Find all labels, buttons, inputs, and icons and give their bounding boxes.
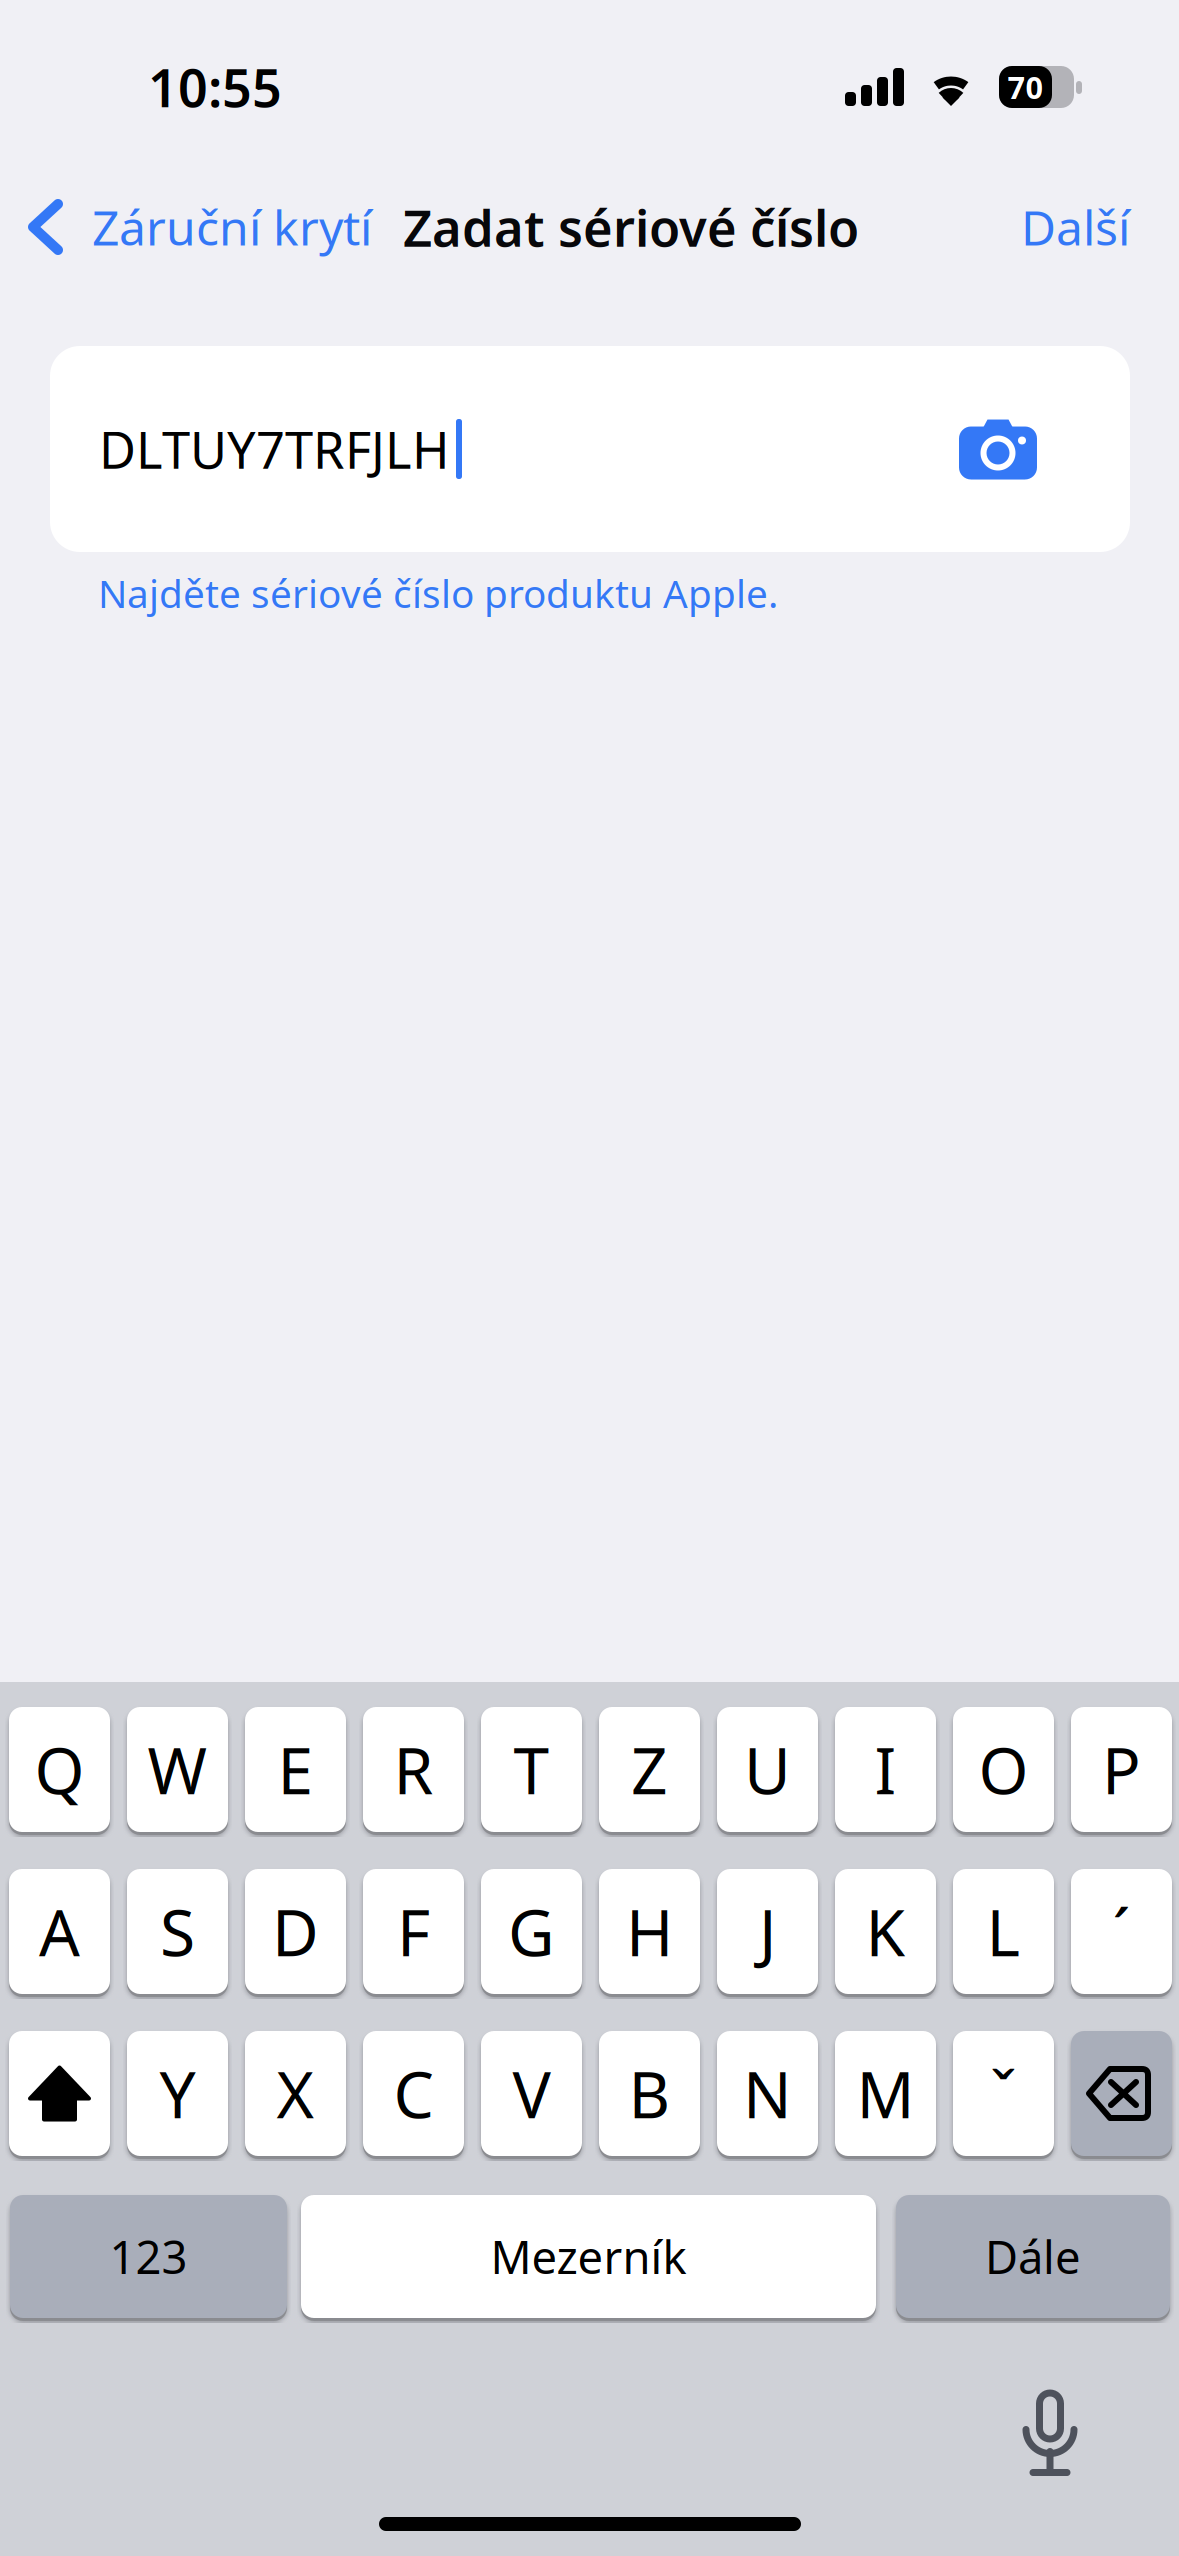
button[interactable]: O <box>953 1705 1054 1834</box>
staticText: 123 <box>109 2226 187 2287</box>
button[interactable]: T <box>481 1705 582 1834</box>
button[interactable]: D <box>245 1867 346 1996</box>
staticText: V <box>512 2051 550 2136</box>
button[interactable]: N <box>717 2029 818 2158</box>
staticText: ˇ <box>990 2051 1017 2136</box>
button[interactable] <box>1071 2029 1172 2158</box>
button[interactable]: G <box>481 1867 582 1996</box>
button[interactable]: I <box>835 1705 936 1834</box>
button[interactable]: W <box>127 1705 228 1834</box>
button[interactable]: F <box>363 1867 464 1996</box>
button[interactable]: Skenovat fotoaparátem <box>938 394 1058 504</box>
staticText: K <box>865 1889 905 1974</box>
staticText: Z <box>631 1727 668 1812</box>
staticText: B <box>628 2051 670 2136</box>
button[interactable]: Záruční krytí <box>27 177 377 277</box>
staticText: X <box>276 2051 314 2136</box>
button[interactable]: Diktovat <box>995 2361 1105 2471</box>
staticText: L <box>986 1889 1020 1974</box>
staticText: Záruční krytí <box>92 195 372 259</box>
button[interactable]: Dále <box>896 2193 1170 2320</box>
button[interactable]: M <box>835 2029 936 2158</box>
staticText: R <box>393 1727 433 1812</box>
staticText: U <box>744 1727 791 1812</box>
staticText: T <box>513 1727 549 1812</box>
button[interactable]: J <box>717 1867 818 1996</box>
staticText: Q <box>34 1727 84 1812</box>
staticText: Mezerník <box>490 2226 686 2287</box>
staticText: Y <box>159 2051 195 2136</box>
button[interactable]: L <box>953 1867 1054 1996</box>
staticText: P <box>1102 1727 1141 1812</box>
button[interactable]: Další <box>930 177 1130 277</box>
button[interactable]: Q <box>9 1705 110 1834</box>
staticText: H <box>626 1889 673 1974</box>
button[interactable]: U <box>717 1705 818 1834</box>
button[interactable]: B <box>599 2029 700 2158</box>
staticText: 70 <box>1007 67 1043 107</box>
button[interactable]: X <box>245 2029 346 2158</box>
button[interactable]: Z <box>599 1705 700 1834</box>
button[interactable]: K <box>835 1867 936 1996</box>
button[interactable]: ´ <box>1071 1867 1172 1996</box>
staticText: I <box>874 1727 896 1812</box>
button[interactable]: S <box>127 1867 228 1996</box>
button[interactable]: V <box>481 2029 582 2158</box>
staticText: M <box>856 2051 914 2136</box>
button[interactable]: E <box>245 1705 346 1834</box>
staticText: Další <box>1021 195 1130 259</box>
button[interactable]: R <box>363 1705 464 1834</box>
button[interactable]: P <box>1071 1705 1172 1834</box>
staticText: W <box>147 1727 207 1812</box>
staticText: C <box>393 2051 433 2136</box>
staticText: DLTUY7TRFJLH <box>99 415 450 483</box>
staticText: F <box>397 1889 430 1974</box>
button[interactable]: 123 <box>10 2193 287 2320</box>
staticText: 10:55 <box>148 52 282 122</box>
staticText: Zadat sériové číslo <box>403 193 859 261</box>
button[interactable]: ˇ <box>953 2029 1054 2158</box>
staticText: G <box>508 1889 555 1974</box>
button[interactable]: C <box>363 2029 464 2158</box>
button[interactable]: A <box>9 1867 110 1996</box>
staticText: Dále <box>985 2226 1081 2287</box>
staticText: O <box>978 1727 1028 1812</box>
staticText: ´ <box>1112 1889 1130 1974</box>
staticText: S <box>160 1889 195 1974</box>
button[interactable]: H <box>599 1867 700 1996</box>
button[interactable]: Najděte sériové číslo produktu Apple. <box>98 562 858 624</box>
staticText: D <box>272 1889 319 1974</box>
button[interactable]: Mezerník <box>301 2193 876 2320</box>
staticText: J <box>759 1889 776 1974</box>
button[interactable] <box>9 2029 110 2158</box>
staticText: Najděte sériové číslo produktu Apple. <box>98 567 778 619</box>
staticText: A <box>39 1889 80 1974</box>
staticText: E <box>277 1727 313 1812</box>
staticText: N <box>743 2051 792 2136</box>
button[interactable]: Y <box>127 2029 228 2158</box>
